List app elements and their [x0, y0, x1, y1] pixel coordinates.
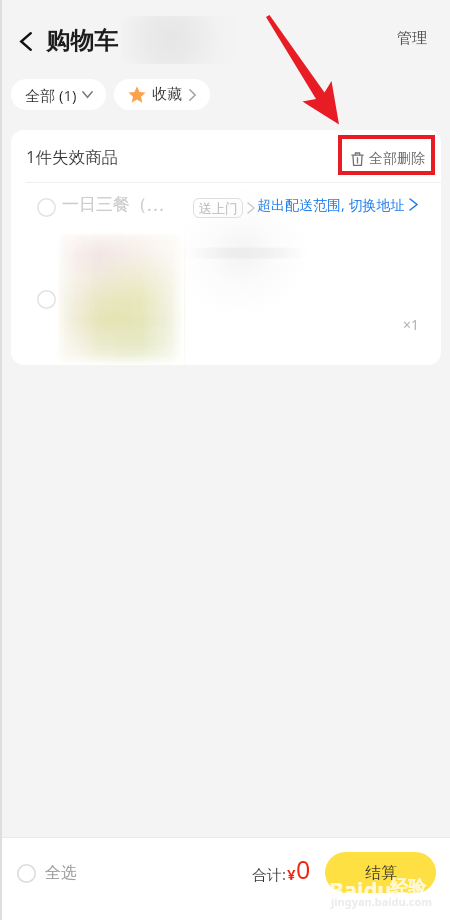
staticText: 0 — [296, 852, 311, 886]
staticText: 合计: — [252, 864, 287, 884]
staticText: 结算 — [365, 863, 397, 883]
staticText: 收藏 — [152, 85, 182, 104]
button[interactable]: 管理 — [389, 22, 435, 55]
staticText: jingyan.baidu.com — [331, 894, 433, 909]
staticText: 经验 — [390, 876, 426, 899]
button[interactable]: 全部 (1) — [11, 79, 106, 110]
staticText: 购物车 — [46, 26, 118, 56]
staticText: 送上门 — [199, 200, 238, 216]
staticText: 全部删除 — [369, 150, 425, 168]
staticText: 管理 — [397, 29, 427, 48]
staticText: 超出配送范围, 切换地址 — [257, 195, 405, 214]
staticText: 一日三餐（ — [62, 194, 147, 215]
button[interactable]: 超出配送范围, 切换地址 — [257, 195, 417, 214]
staticText: ¥ — [287, 864, 296, 884]
staticText: ... — [147, 193, 166, 216]
button[interactable]: 收藏 — [114, 79, 210, 110]
button[interactable]: 全部删除 — [348, 146, 428, 172]
staticText: ×1 — [403, 315, 420, 334]
button[interactable]: Back — [6, 22, 45, 61]
staticText: 1件失效商品 — [26, 145, 118, 168]
button[interactable]: 全选 — [12, 858, 82, 888]
staticText: 全部 (1) — [25, 85, 77, 105]
staticText: Baidu — [329, 874, 392, 904]
staticText: 全选 — [45, 863, 77, 883]
button[interactable]: 结算 — [325, 852, 436, 893]
